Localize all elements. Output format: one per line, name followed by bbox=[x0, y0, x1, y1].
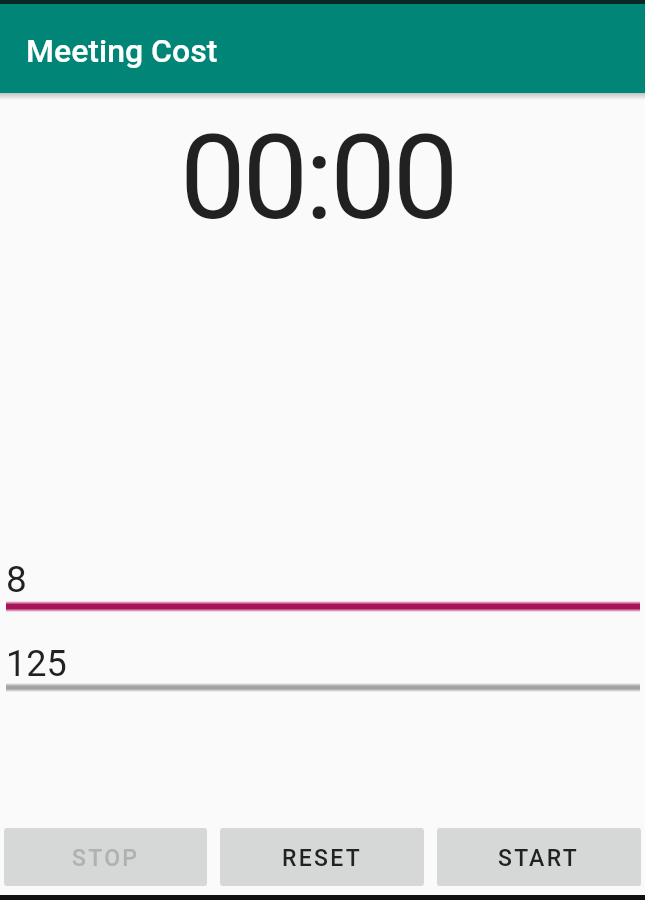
staticText: 125 bbox=[6, 643, 67, 685]
staticText: 00:00 bbox=[180, 109, 456, 246]
button[interactable]: STOP bbox=[4, 828, 207, 886]
button[interactable]: RESET bbox=[220, 828, 424, 886]
staticText: STOP bbox=[72, 845, 140, 872]
staticText: Meeting Cost bbox=[26, 32, 218, 70]
staticText: RESET bbox=[282, 845, 362, 872]
staticText: START bbox=[498, 845, 580, 872]
button[interactable] bbox=[6, 548, 640, 610]
button[interactable]: START bbox=[437, 828, 641, 886]
staticText: 8 bbox=[6, 558, 27, 601]
button[interactable] bbox=[6, 633, 640, 691]
